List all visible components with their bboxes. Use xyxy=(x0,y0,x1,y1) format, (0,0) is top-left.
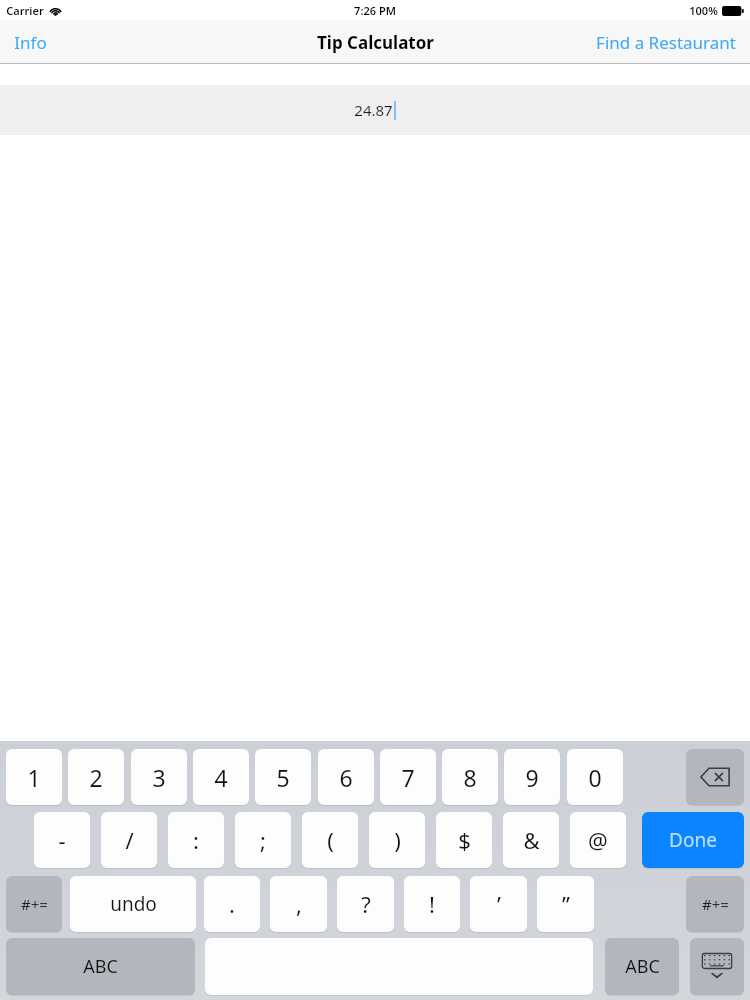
button[interactable]: undo xyxy=(70,876,196,932)
staticText: ABC xyxy=(83,954,118,979)
staticText: , xyxy=(296,889,302,919)
staticText: ’ xyxy=(497,889,501,919)
button[interactable]: & xyxy=(503,812,559,868)
button[interactable]: : xyxy=(168,812,224,868)
staticText: & xyxy=(523,825,540,855)
button[interactable]: $ xyxy=(436,812,492,868)
button[interactable]: 4 xyxy=(193,749,249,805)
staticText: 100% xyxy=(689,3,718,18)
button[interactable]: 7 xyxy=(380,749,436,805)
staticText: #+= xyxy=(21,894,48,914)
button[interactable]: 5 xyxy=(255,749,311,805)
staticText: Carrier xyxy=(6,3,44,18)
button[interactable]: 9 xyxy=(504,749,560,805)
staticText: 0 xyxy=(588,762,602,793)
staticText: 7 xyxy=(401,762,415,793)
button[interactable]: . xyxy=(204,876,260,932)
staticText: @ xyxy=(588,825,608,855)
staticText: / xyxy=(125,825,134,855)
staticText: Tip Calculator xyxy=(317,31,434,54)
staticText: 5 xyxy=(276,762,290,793)
button[interactable]: 6 xyxy=(318,749,374,805)
staticText: 4 xyxy=(214,762,228,793)
button[interactable]: Delete xyxy=(686,749,744,805)
staticText: ? xyxy=(361,889,371,919)
button[interactable]: #+= xyxy=(6,876,62,932)
button[interactable]: ’ xyxy=(470,876,527,932)
button[interactable]: ? xyxy=(337,876,394,932)
button[interactable]: 2 xyxy=(68,749,124,805)
button[interactable]: ( xyxy=(302,812,358,868)
button[interactable]: ABC xyxy=(605,938,679,995)
staticText: ; xyxy=(260,825,266,855)
staticText: 8 xyxy=(463,762,477,793)
staticText: 7:26 PM xyxy=(354,3,396,18)
staticText: #+= xyxy=(702,894,729,914)
button[interactable]: ! xyxy=(404,876,460,932)
button[interactable]: 3 xyxy=(131,749,187,805)
button[interactable]: Info xyxy=(0,23,61,62)
staticText: : xyxy=(193,825,199,855)
button[interactable]: ” xyxy=(537,876,594,932)
staticText: ” xyxy=(562,889,570,919)
staticText: ! xyxy=(429,889,435,919)
button[interactable]: ; xyxy=(235,812,291,868)
button[interactable]: 24.87 xyxy=(0,85,750,135)
staticText: . xyxy=(229,889,235,919)
staticText: 24.87 xyxy=(354,100,393,120)
staticText: $ xyxy=(458,825,471,855)
button[interactable]: 8 xyxy=(442,749,498,805)
button[interactable]: Hide keyboard xyxy=(690,938,744,995)
staticText: ) xyxy=(394,825,401,855)
staticText: 1 xyxy=(27,762,41,793)
button[interactable]: / xyxy=(101,812,157,868)
staticText: Find a Restaurant xyxy=(596,31,736,54)
staticText: ( xyxy=(327,825,334,855)
staticText: ABC xyxy=(625,954,660,979)
staticText: Info xyxy=(14,31,47,54)
staticText: 3 xyxy=(152,762,166,793)
staticText: Done xyxy=(669,827,717,853)
staticText: - xyxy=(58,825,66,855)
staticText: 2 xyxy=(89,762,103,793)
staticText: 9 xyxy=(525,762,539,793)
button[interactable]: @ xyxy=(570,812,626,868)
button[interactable]: 1 xyxy=(6,749,62,805)
button[interactable]: Done xyxy=(642,812,744,868)
button[interactable]: ) xyxy=(369,812,425,868)
button[interactable]: - xyxy=(34,812,90,868)
staticText: undo xyxy=(110,891,157,917)
button[interactable]: , xyxy=(270,876,327,932)
button[interactable]: ABC xyxy=(6,938,195,995)
button[interactable]: 0 xyxy=(567,749,623,805)
staticText: 6 xyxy=(339,762,353,793)
button[interactable]: Find a Restaurant xyxy=(582,23,750,62)
button[interactable]: #+= xyxy=(686,876,744,932)
